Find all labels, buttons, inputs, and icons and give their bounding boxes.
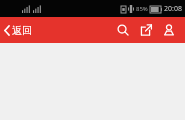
- staticText: 20:08: [164, 4, 182, 14]
- button[interactable]: Profile: [159, 20, 179, 40]
- button[interactable]: 返回: [0, 17, 38, 43]
- button[interactable]: Share: [136, 20, 156, 40]
- button[interactable]: Search: [113, 20, 133, 40]
- staticText: 85%: [136, 5, 148, 13]
- staticText: 返回: [12, 24, 32, 37]
